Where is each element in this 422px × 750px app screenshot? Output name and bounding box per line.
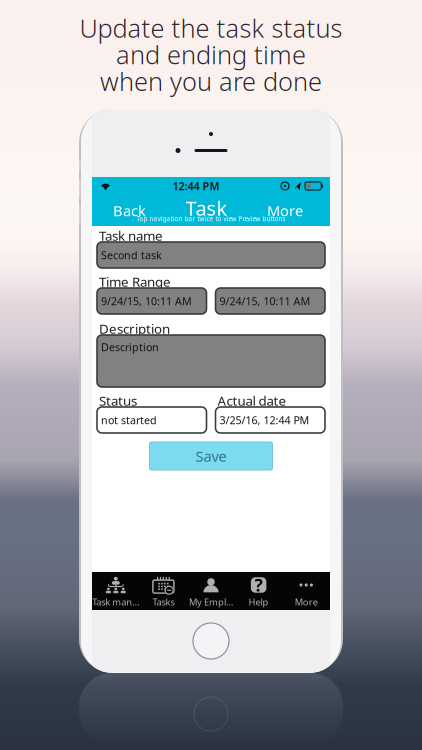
staticText: Task name [99, 227, 163, 244]
staticText: ? [255, 573, 263, 596]
staticText: Back [113, 201, 146, 220]
button[interactable]: More [282, 572, 330, 610]
staticText: Description [99, 320, 170, 337]
button[interactable]: Tasks [140, 572, 187, 610]
staticText: More [295, 596, 318, 608]
button[interactable]: My Empl… [187, 572, 235, 610]
staticText: not started [101, 413, 157, 427]
staticText: Help [249, 596, 269, 608]
button[interactable]: Save [149, 442, 272, 470]
staticText: Save [195, 446, 226, 466]
staticText: Status [99, 392, 137, 409]
staticText: Update the task status [79, 11, 342, 45]
button[interactable]: ? [235, 572, 282, 610]
staticText: Actual date [217, 392, 286, 409]
staticText: More [267, 201, 303, 220]
staticText: Tap navigation bar twice to view Preview… [136, 214, 285, 223]
button[interactable]: Task man… [92, 572, 140, 610]
button[interactable]: More [262, 197, 308, 221]
button[interactable]: Back [108, 197, 151, 221]
staticText: 12:44 PM [172, 179, 219, 193]
staticText: 9/24/15, 10:11 AM [101, 294, 192, 308]
staticText: 9/24/15, 10:11 AM [219, 294, 310, 308]
staticText: Task man… [92, 596, 139, 608]
staticText: Tasks [152, 596, 174, 608]
staticText: Description [101, 340, 159, 354]
staticText: and ending time [116, 38, 306, 71]
staticText: Second task [101, 248, 162, 262]
staticText: My Empl… [189, 596, 233, 608]
staticText: when you are done [100, 64, 322, 98]
staticText: 3/25/16, 12:44 PM [219, 413, 309, 427]
staticText: Task [185, 195, 227, 221]
staticText: Time Range [99, 273, 171, 290]
